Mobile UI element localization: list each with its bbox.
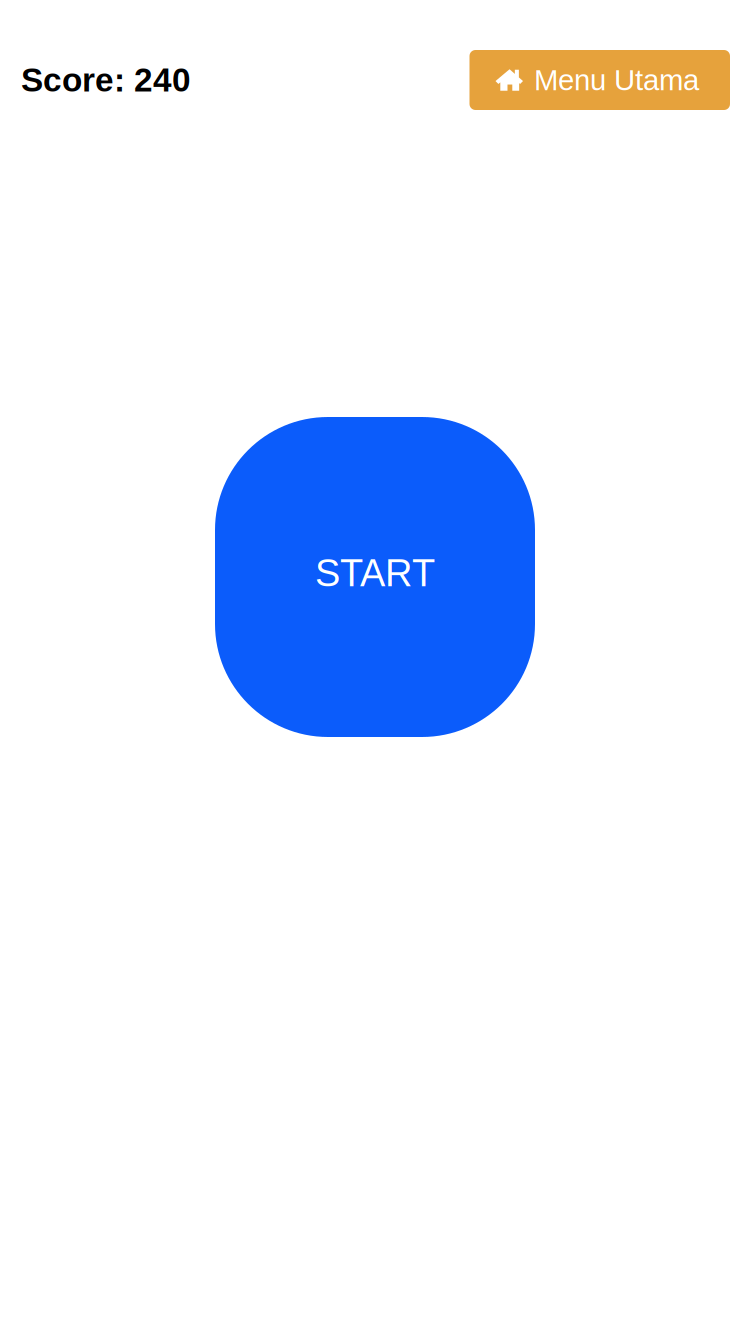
- button[interactable]: START: [215, 417, 535, 737]
- staticText: START: [315, 552, 435, 594]
- staticText: Menu Utama: [534, 64, 699, 96]
- staticText: Score: 240: [21, 61, 191, 99]
- button[interactable]: Menu Utama: [469, 50, 730, 110]
